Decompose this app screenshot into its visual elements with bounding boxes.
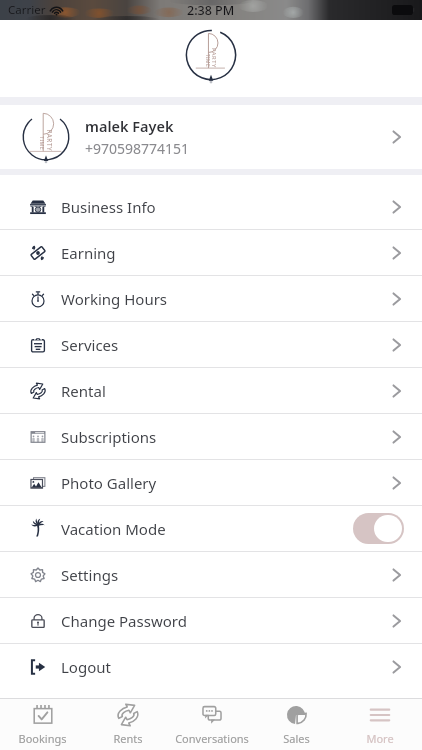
staticText: TIME (39, 136, 46, 151)
staticText: Working Hours (61, 289, 168, 309)
button[interactable]: More (338, 699, 422, 750)
button[interactable]: Services (0, 322, 422, 367)
staticText: PARTY (44, 129, 53, 151)
staticText: Settings (61, 565, 119, 585)
button[interactable]: Settings (0, 552, 422, 597)
staticText: Business Info (61, 197, 156, 217)
other: Open (390, 197, 404, 217)
other: Open (390, 243, 404, 263)
staticText: Bookings (18, 731, 67, 746)
button[interactable]: Working Hours (0, 276, 422, 321)
button[interactable]: Business Info (0, 184, 422, 229)
button[interactable]: Bookings (0, 699, 85, 750)
other: Open (390, 127, 404, 147)
button[interactable]: Subscriptions (0, 414, 422, 459)
button[interactable]: Rental (0, 368, 422, 413)
staticText: TIME (204, 54, 211, 67)
button[interactable]: Rents (85, 699, 170, 750)
staticText: Carrier (8, 2, 46, 18)
button[interactable]: Change Password (0, 598, 422, 643)
staticText: Change Password (61, 611, 187, 631)
other: Open (390, 611, 404, 631)
button[interactable]: Conversations (170, 699, 254, 750)
staticText: Conversations (175, 731, 249, 746)
staticText: Vacation Mode (61, 519, 166, 539)
other: Open (390, 427, 404, 447)
button[interactable]: Logout (0, 644, 422, 689)
button[interactable]: Earning (0, 230, 422, 275)
staticText: malek Fayek (85, 116, 174, 136)
button[interactable]: Vacation Mode (0, 506, 422, 551)
staticText: Logout (61, 657, 111, 677)
staticText: PARTY (210, 48, 218, 68)
other: Open (390, 289, 404, 309)
button[interactable]: Sales (254, 699, 338, 750)
staticText: Earning (61, 243, 116, 263)
staticText: Subscriptions (61, 427, 157, 447)
button[interactable]: Photo Gallery (0, 460, 422, 505)
other: Open (390, 473, 404, 493)
other: Open (390, 565, 404, 585)
staticText: Photo Gallery (61, 473, 157, 493)
staticText: Rental (61, 381, 106, 401)
staticText: Rents (113, 731, 143, 746)
other: Open (390, 381, 404, 401)
other: Open (390, 335, 404, 355)
staticText: 2:38 PM (187, 2, 235, 19)
staticText: +970598774151 (85, 139, 190, 158)
staticText: More (366, 731, 394, 746)
button[interactable]: PARTY (0, 105, 422, 169)
staticText: Sales (283, 731, 310, 746)
staticText: Services (61, 335, 119, 355)
other: Open (390, 657, 404, 677)
button[interactable]: Vacation mode toggle (353, 513, 404, 544)
